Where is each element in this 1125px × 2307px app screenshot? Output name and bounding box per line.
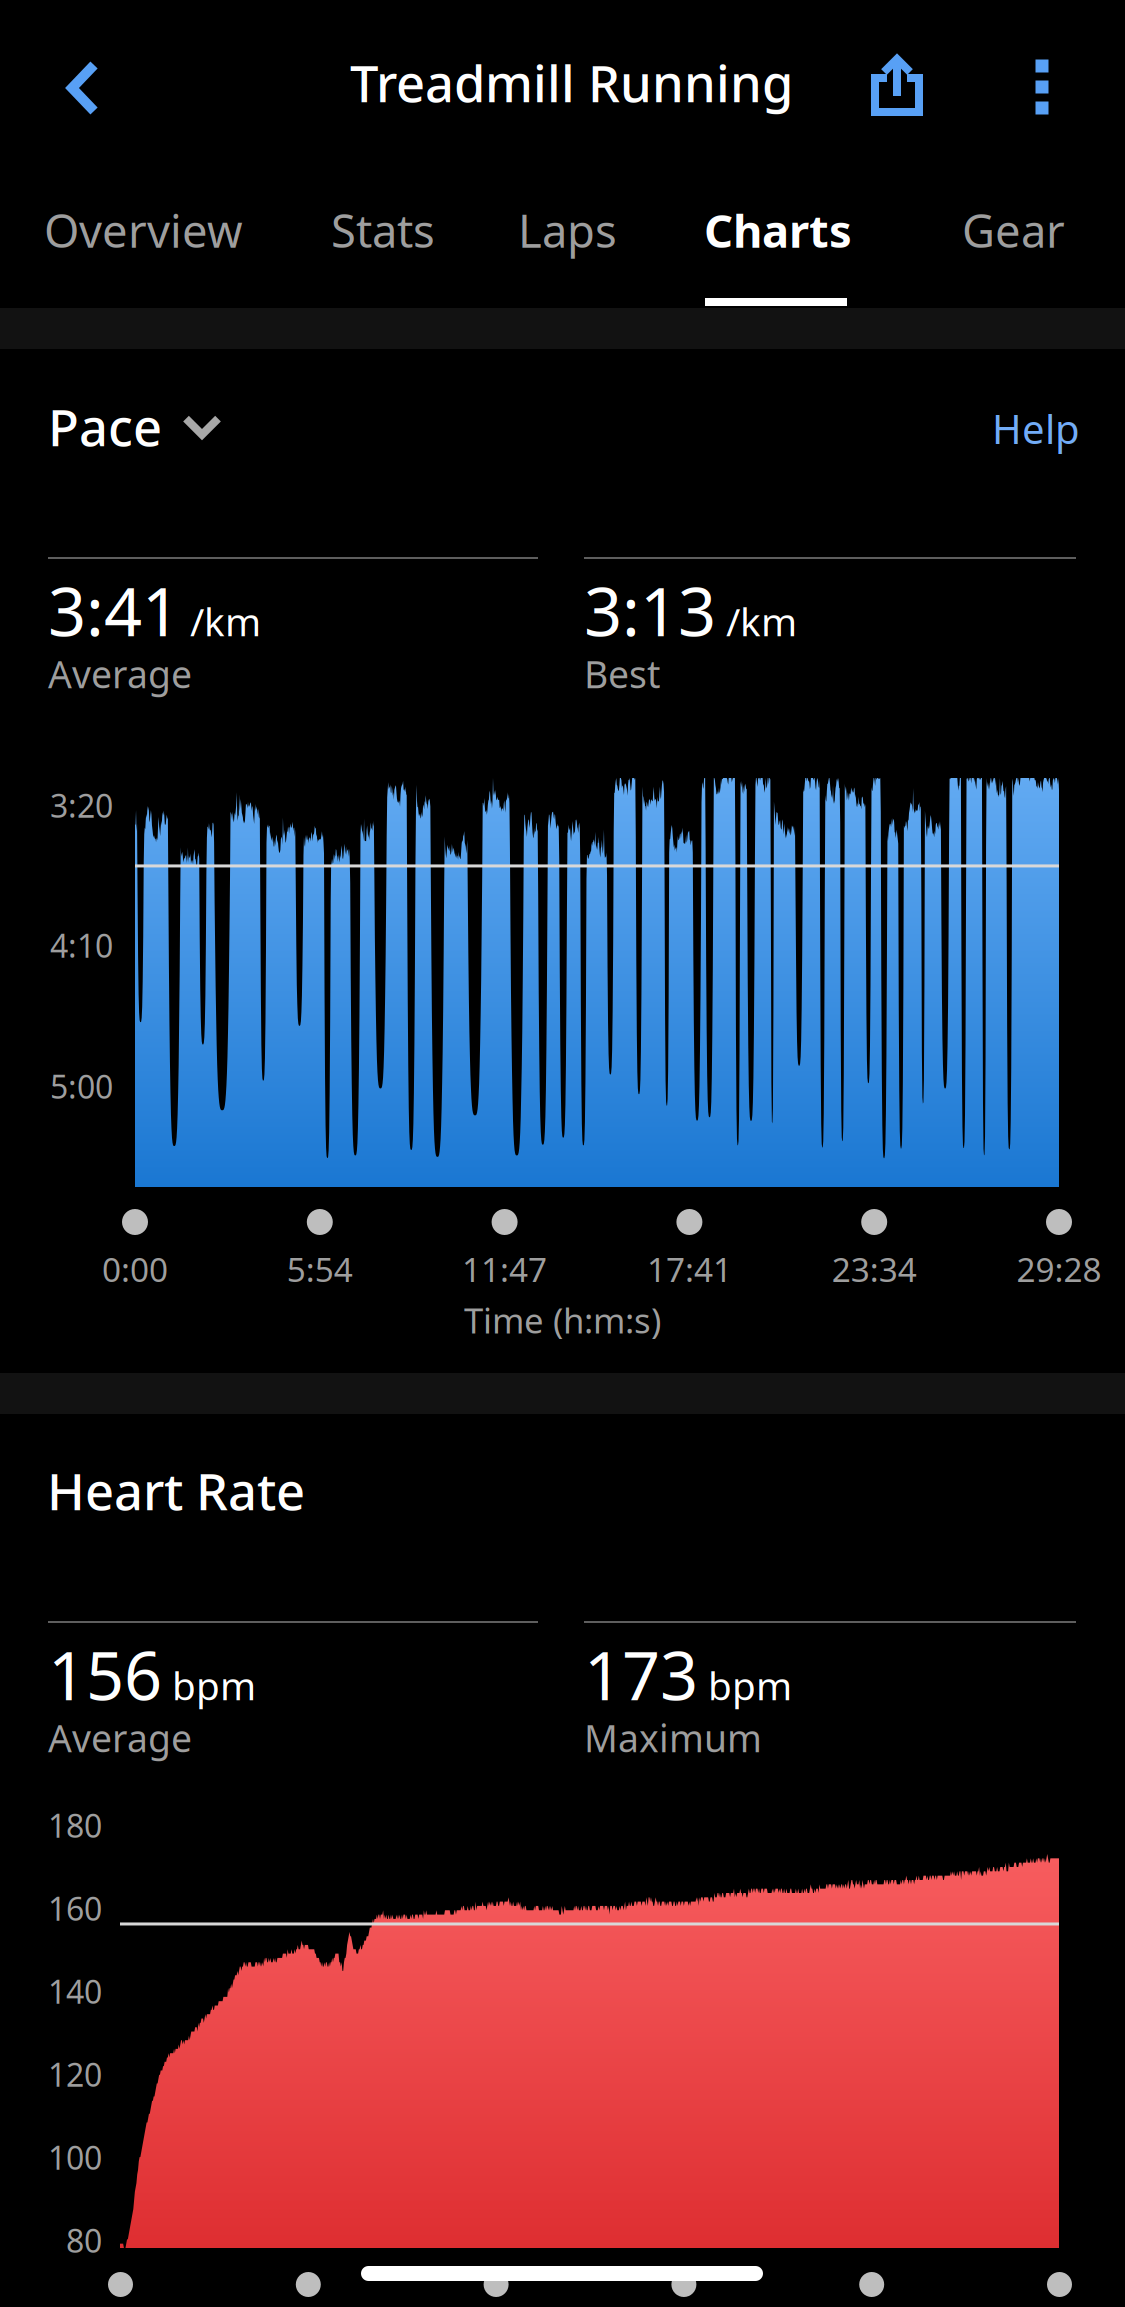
- staticText: Average: [48, 1713, 192, 1763]
- staticText: 11:47: [462, 1247, 547, 1291]
- button[interactable]: Gear: [962, 170, 1065, 290]
- staticText: 17:41: [647, 1247, 732, 1291]
- staticText: 3:13: [584, 566, 716, 654]
- staticText: Pace: [48, 393, 162, 460]
- staticText: 140: [48, 1970, 102, 2012]
- staticText: 173: [584, 1630, 698, 1718]
- staticText: 5:54: [287, 1247, 353, 1291]
- staticText: Overview: [44, 200, 243, 260]
- staticText: 3:20: [50, 784, 113, 826]
- staticText: Average: [48, 649, 192, 699]
- staticText: Laps: [518, 200, 617, 260]
- staticText: bpm: [708, 1659, 792, 1711]
- staticText: Stats: [331, 200, 435, 260]
- staticText: /km: [190, 595, 261, 647]
- button[interactable]: Laps: [518, 170, 617, 290]
- staticText: Help: [992, 402, 1080, 455]
- staticText: 23:34: [832, 1247, 917, 1291]
- button[interactable]: Charts: [704, 170, 852, 290]
- staticText: Best: [584, 649, 660, 699]
- button[interactable]: Back: [37, 37, 129, 139]
- staticText: 4:10: [50, 924, 113, 966]
- staticText: 160: [48, 1887, 102, 1929]
- staticText: 0:00: [102, 1247, 168, 1291]
- staticText: Gear: [962, 200, 1065, 260]
- staticText: 29:28: [1016, 1247, 1101, 1291]
- staticText: 120: [48, 2053, 102, 2095]
- staticText: 180: [48, 1804, 102, 1846]
- staticText: Heart Rate: [47, 1457, 305, 1524]
- staticText: Maximum: [584, 1713, 762, 1763]
- button[interactable]: More options: [992, 36, 1092, 138]
- staticText: 156: [48, 1630, 162, 1718]
- button[interactable]: Pace: [34, 367, 236, 486]
- staticText: Charts: [704, 200, 852, 260]
- staticText: bpm: [172, 1659, 256, 1711]
- button[interactable]: Help: [978, 376, 1094, 481]
- staticText: Treadmill Running: [350, 49, 793, 116]
- button[interactable]: Overview: [44, 170, 243, 290]
- staticText: /km: [726, 595, 797, 647]
- staticText: 100: [48, 2136, 102, 2178]
- button[interactable]: Stats: [331, 170, 435, 290]
- button[interactable]: Share: [846, 34, 948, 136]
- staticText: 3:41: [48, 566, 180, 654]
- staticText: 5:00: [50, 1065, 113, 1107]
- staticText: 80: [66, 2219, 102, 2261]
- staticText: Time (h:m:s): [464, 1297, 661, 1343]
